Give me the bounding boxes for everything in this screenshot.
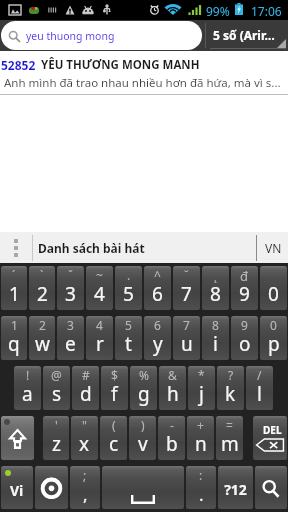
- button[interactable]: ˛: [202, 266, 229, 310]
- button[interactable]: /: [246, 366, 273, 410]
- button[interactable]: ?: [217, 366, 244, 410]
- staticText: 8: [210, 281, 221, 307]
- button[interactable]: #: [72, 366, 99, 410]
- button[interactable]: Shift: [1, 416, 34, 460]
- staticText: b: [166, 431, 178, 457]
- button[interactable]: &: [159, 366, 186, 410]
- button[interactable]: ?12: [218, 466, 253, 509]
- staticText: 4: [96, 317, 103, 333]
- button[interactable]: 5 số (Arir…: [206, 20, 288, 51]
- staticText: `: [40, 267, 44, 283]
- staticText: ´: [12, 267, 16, 283]
- staticText: ): [141, 417, 145, 433]
- staticText: c: [109, 431, 119, 457]
- button[interactable]: Input method settings: [35, 466, 68, 509]
- button[interactable]: ;: [70, 466, 100, 509]
- staticText: 5: [123, 281, 134, 307]
- button[interactable]: ˘: [173, 266, 200, 310]
- staticText: ~: [96, 267, 103, 283]
- staticText: 3: [65, 281, 76, 307]
- button[interactable]: 8: [202, 316, 229, 360]
- staticText: z: [52, 431, 61, 457]
- button[interactable]: 3: [57, 316, 84, 360]
- staticText: .: [199, 483, 204, 506]
- staticText: e: [65, 331, 76, 357]
- button[interactable]: ~: [86, 266, 113, 310]
- button[interactable]: 5: [115, 316, 142, 360]
- staticText: 3: [67, 317, 74, 333]
- other: Shift: [9, 429, 26, 449]
- button[interactable]: 9: [231, 316, 258, 360]
- other: Space: [131, 495, 155, 504]
- staticText: y: [153, 331, 163, 357]
- button[interactable]: ^: [144, 266, 171, 310]
- button[interactable]: =: [216, 416, 243, 460]
- staticText: 1: [11, 317, 18, 333]
- button[interactable]: -: [158, 416, 185, 460]
- staticText: DEL: [263, 423, 282, 437]
- button[interactable]: +: [187, 416, 214, 460]
- button[interactable]: ': [43, 416, 69, 460]
- staticText: -: [170, 417, 174, 433]
- staticText: q: [8, 331, 20, 357]
- button[interactable]: đ: [231, 266, 258, 310]
- button[interactable]: :: [186, 466, 216, 509]
- staticText: .: [127, 267, 131, 283]
- button[interactable]: 6: [144, 316, 171, 360]
- staticText: p: [268, 331, 280, 357]
- staticText: &: [168, 367, 177, 383]
- staticText: k: [225, 381, 236, 407]
- staticText: ": [82, 417, 87, 433]
- staticText: 7: [181, 281, 192, 307]
- button[interactable]: ˇ: [57, 266, 84, 310]
- button[interactable]: 1: [1, 316, 27, 360]
- button[interactable]: yeu thuong mong: [1, 21, 202, 50]
- staticText: !: [26, 367, 30, 383]
- button[interactable]: .: [115, 266, 142, 310]
- staticText: :: [199, 467, 203, 483]
- button[interactable]: Delete: [253, 416, 287, 460]
- button[interactable]: 0: [260, 266, 287, 310]
- staticText: YÊU THƯƠNG MONG MANH: [41, 57, 200, 73]
- staticText: ˘: [184, 267, 189, 283]
- button[interactable]: ": [71, 416, 98, 460]
- button[interactable]: 2: [29, 316, 55, 360]
- other: Input method settings: [41, 477, 62, 498]
- other: Delete: [253, 416, 287, 460]
- button[interactable]: (: [100, 416, 127, 460]
- staticText: v: [138, 431, 148, 457]
- button[interactable]: $: [101, 366, 128, 410]
- staticText: 17:06: [251, 3, 282, 19]
- button[interactable]: *: [188, 366, 215, 410]
- button[interactable]: `: [29, 266, 55, 310]
- staticText: a: [22, 381, 33, 407]
- staticText: 8: [212, 317, 219, 333]
- other: Search: [262, 480, 280, 498]
- staticText: f: [111, 381, 118, 407]
- other: Dropdown: [277, 39, 286, 48]
- button[interactable]: Search: [255, 466, 287, 509]
- staticText: 9: [239, 281, 250, 307]
- button[interactable]: 52852: [0, 51, 288, 95]
- button[interactable]: Vi: [1, 466, 33, 509]
- staticText: ˛: [214, 267, 217, 283]
- staticText: o: [239, 331, 251, 357]
- staticText: =: [226, 417, 233, 433]
- staticText: 52852: [1, 57, 36, 73]
- button[interactable]: !: [14, 366, 41, 410]
- button[interactable]: @: [43, 366, 70, 410]
- button[interactable]: 0: [260, 316, 287, 360]
- staticText: ?: [228, 367, 234, 383]
- button[interactable]: %: [130, 366, 157, 410]
- button[interactable]: Space: [102, 466, 184, 509]
- staticText: +: [197, 417, 204, 433]
- staticText: %: [139, 367, 149, 383]
- staticText: Anh mình đã trao nhau nhiều hơn đã hứa, …: [4, 75, 281, 91]
- button[interactable]: 7: [173, 316, 200, 360]
- button[interactable]: ): [129, 416, 156, 460]
- staticText: 2: [39, 317, 46, 333]
- button[interactable]: 4: [86, 316, 113, 360]
- staticText: #: [82, 367, 90, 383]
- button[interactable]: ´: [1, 266, 27, 310]
- staticText: 9: [241, 317, 248, 333]
